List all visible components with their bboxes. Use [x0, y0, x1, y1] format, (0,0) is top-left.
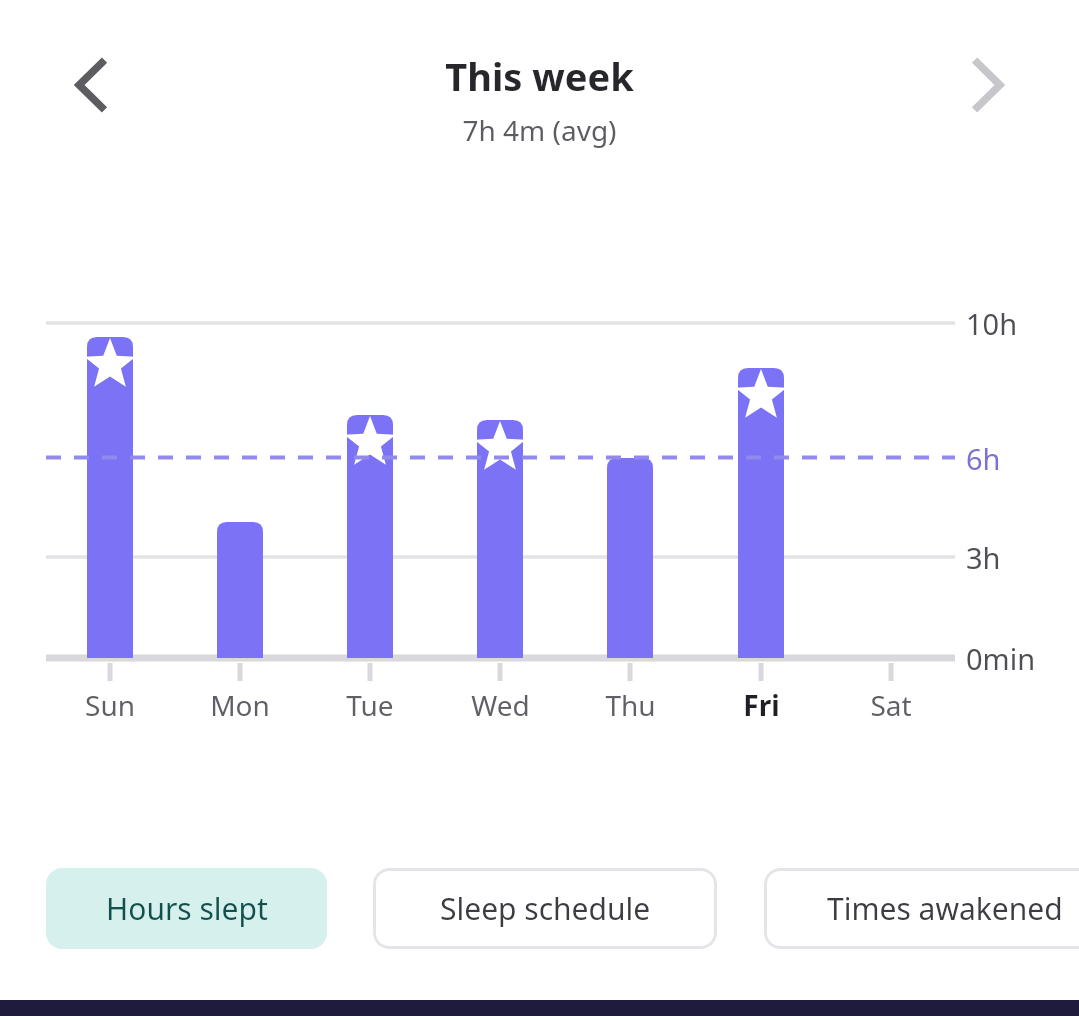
staticText: Sat: [870, 686, 912, 724]
staticText: Tue: [346, 686, 394, 724]
button[interactable]: Sleep schedule: [373, 868, 717, 949]
staticText: 7h 4m (avg): [462, 111, 617, 149]
button[interactable]: Times awakened: [764, 868, 1079, 949]
staticText: Fri: [743, 686, 780, 724]
staticText: Hours slept: [106, 888, 268, 929]
button[interactable]: Previous week: [45, 38, 137, 132]
staticText: Times awakened: [827, 888, 1063, 929]
staticText: 0min: [966, 639, 1036, 678]
staticText: 6h: [966, 439, 1001, 478]
staticText: This week: [445, 50, 634, 102]
staticText: Mon: [210, 686, 270, 724]
staticText: 10h: [966, 304, 1018, 343]
button[interactable]: Hours slept: [46, 868, 327, 949]
staticText: Sun: [85, 686, 135, 724]
staticText: 3h: [966, 538, 1001, 577]
staticText: Thu: [605, 686, 656, 724]
button[interactable]: Next week: [942, 38, 1034, 132]
staticText: Sleep schedule: [440, 888, 651, 929]
staticText: Wed: [471, 686, 530, 724]
